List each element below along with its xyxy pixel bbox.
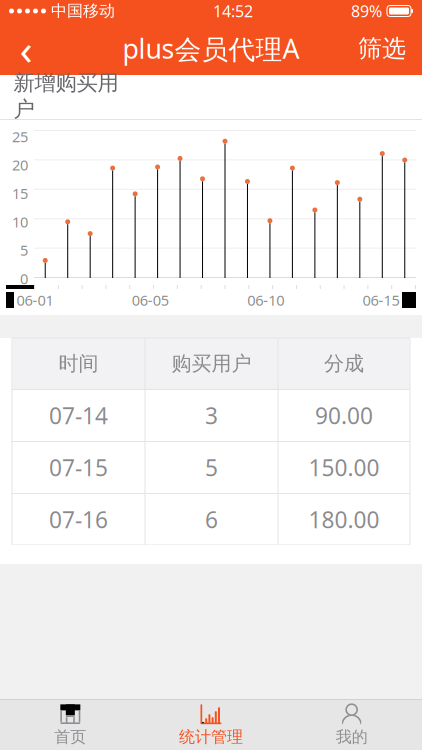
- button[interactable]: 首页: [0, 700, 141, 750]
- staticText: 6: [205, 504, 218, 534]
- staticText: 5: [20, 240, 28, 260]
- button[interactable]: 筛选: [342, 22, 422, 75]
- staticText: 统计管理: [179, 727, 243, 747]
- staticText: 新增购买用户: [13, 70, 118, 122]
- staticText: 首页: [54, 727, 86, 747]
- staticText: 时间: [58, 351, 98, 376]
- staticText: 06-15: [362, 290, 399, 310]
- button[interactable]: 统计管理: [141, 700, 281, 750]
- staticText: 06-01: [16, 290, 53, 310]
- staticText: 筛选: [358, 34, 406, 63]
- staticText: 3: [205, 400, 218, 430]
- button[interactable]: 我的: [281, 700, 422, 750]
- staticText: 180.00: [308, 504, 379, 534]
- staticText: 25: [12, 127, 28, 146]
- staticText: 150.00: [308, 452, 379, 482]
- staticText: 分成: [324, 351, 364, 376]
- staticText: 06-05: [132, 290, 169, 310]
- staticText: 我的: [336, 727, 368, 747]
- staticText: 购买用户: [171, 351, 251, 376]
- staticText: 06-10: [247, 290, 284, 310]
- staticText: 14:52: [213, 0, 253, 22]
- staticText: 中国移动: [51, 1, 115, 21]
- staticText: 90.00: [315, 400, 373, 430]
- staticText: 10: [12, 212, 28, 231]
- staticText: 89%: [351, 0, 382, 22]
- staticText: 20: [12, 155, 28, 175]
- staticText: plus会员代理A: [122, 31, 299, 66]
- staticText: 5: [205, 452, 218, 482]
- staticText: 0: [20, 269, 28, 288]
- staticText: 07-14: [49, 400, 108, 430]
- staticText: 07-16: [49, 504, 108, 534]
- button[interactable]: Back: [0, 22, 52, 75]
- button[interactable]: 新增购买用户: [10, 75, 122, 119]
- staticText: 07-15: [49, 452, 108, 482]
- staticText: ‹: [19, 20, 32, 77]
- staticText: 15: [12, 184, 28, 203]
